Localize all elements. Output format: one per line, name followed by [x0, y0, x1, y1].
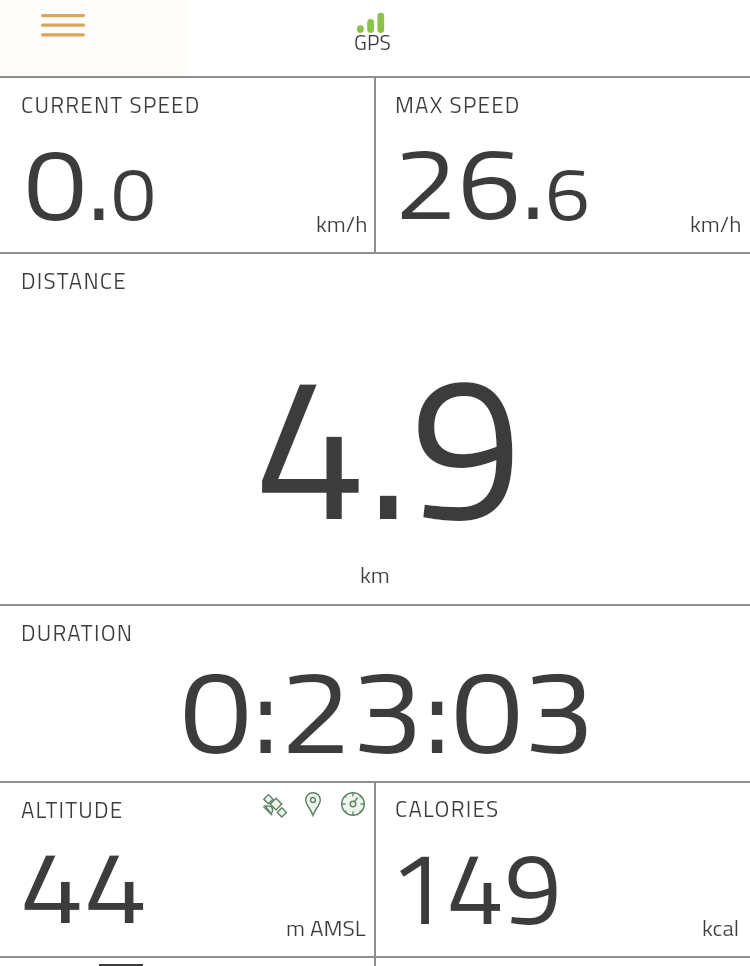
staticText: DURATION [21, 616, 134, 650]
staticText: 6 [545, 135, 591, 249]
staticText: MAX SPEED [395, 88, 521, 122]
staticText: DISTANCE [21, 264, 127, 298]
button[interactable]: Open navigation menu [22, 0, 106, 50]
button[interactable]: GPS signal strength [340, 2, 410, 56]
staticText: 0. [24, 104, 112, 259]
staticText: 26. [394, 103, 546, 258]
staticText: 44 [20, 807, 148, 962]
button[interactable]: Duration [0, 605, 750, 781]
staticText: 0 [111, 135, 157, 249]
staticText: CALORIES [395, 792, 500, 826]
staticText: ALTITUDE [21, 793, 124, 827]
staticText: CURRENT SPEED [21, 88, 201, 122]
staticText: kcal [702, 912, 740, 944]
button[interactable]: Current speed [0, 77, 374, 252]
staticText: 0:23:03 [180, 619, 595, 798]
button[interactable]: Distance [0, 253, 750, 604]
staticText: km/h [316, 208, 368, 240]
staticText: km [360, 559, 390, 591]
staticText: km/h [690, 208, 742, 240]
button[interactable]: Max speed [376, 77, 750, 252]
staticText: 149 [389, 808, 562, 963]
button[interactable]: Calories [376, 782, 750, 956]
staticText: GPS [354, 26, 391, 58]
staticText: 4.9 [254, 289, 523, 598]
button[interactable]: Altitude [0, 782, 374, 956]
staticText: m AMSL [286, 912, 366, 944]
